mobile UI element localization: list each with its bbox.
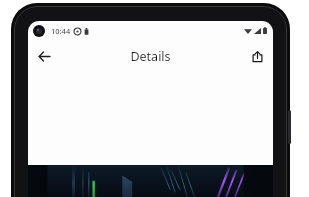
button[interactable]: [28, 165, 273, 197]
button[interactable]: Back: [31, 43, 57, 69]
staticText: 10:44: [51, 26, 71, 36]
staticText: Details: [130, 48, 171, 65]
button[interactable]: Share: [245, 44, 269, 68]
other: Power button: [288, 110, 291, 144]
